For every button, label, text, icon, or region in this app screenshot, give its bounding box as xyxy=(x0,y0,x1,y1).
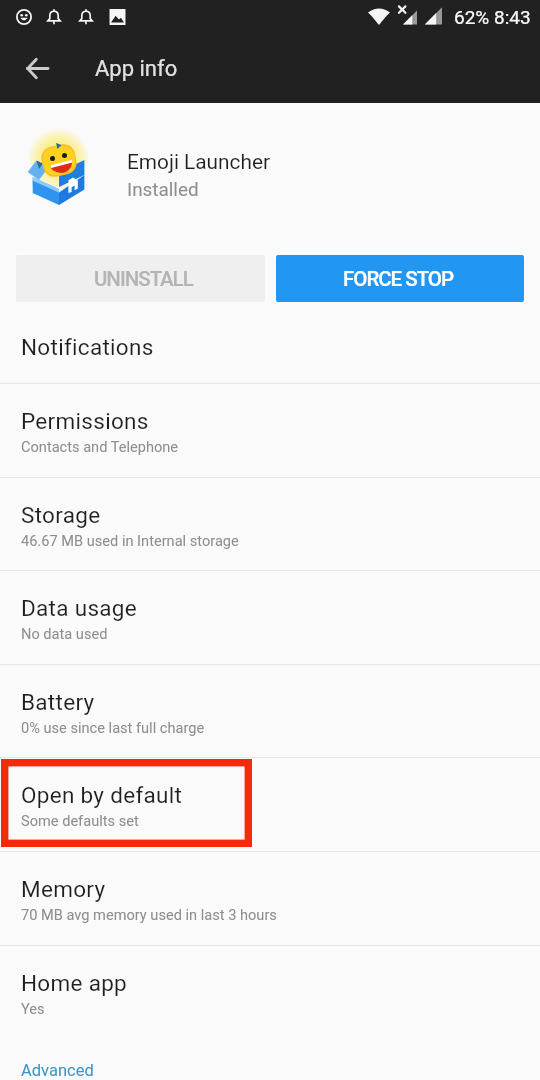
staticText: Data usage xyxy=(21,595,138,621)
button[interactable]: Storage xyxy=(0,477,540,571)
staticText: 62% 8:43 xyxy=(454,6,531,28)
staticText: Emoji Launcher xyxy=(127,150,270,174)
button[interactable]: UNINSTALL xyxy=(16,255,265,302)
button[interactable]: Notifications xyxy=(0,290,540,384)
staticText: Memory xyxy=(21,876,106,902)
staticText: 46.67 MB used in Internal storage xyxy=(21,532,239,549)
staticText: Installed xyxy=(127,178,199,200)
button[interactable]: Advanced xyxy=(0,1035,540,1080)
staticText: Home app xyxy=(21,970,128,996)
button[interactable]: Memory xyxy=(0,851,540,945)
button[interactable]: Open by default xyxy=(0,757,540,851)
button[interactable]: Back xyxy=(9,40,65,96)
staticText: No data used xyxy=(21,625,108,642)
staticText: Permissions xyxy=(21,408,149,434)
staticText: Advanced xyxy=(21,1061,94,1080)
staticText: Battery xyxy=(21,689,95,715)
staticText: Open by default xyxy=(21,782,183,808)
staticText: Contacts and Telephone xyxy=(21,438,179,455)
staticText: Yes xyxy=(21,1000,45,1017)
staticText: Storage xyxy=(21,502,101,528)
button[interactable]: Home app xyxy=(0,945,540,1039)
staticText: FORCE STOP xyxy=(343,267,454,291)
staticText: App info xyxy=(95,56,178,82)
button[interactable]: Data usage xyxy=(0,570,540,664)
staticText: 0% use since last full charge xyxy=(21,719,205,736)
button[interactable]: Battery xyxy=(0,664,540,758)
button[interactable]: Permissions xyxy=(0,383,540,477)
staticText: UNINSTALL xyxy=(94,267,193,291)
staticText: Some defaults set xyxy=(21,812,139,829)
button[interactable]: FORCE STOP xyxy=(276,255,524,302)
staticText: Notifications xyxy=(21,334,154,360)
staticText: 70 MB avg memory used in last 3 hours xyxy=(21,906,277,923)
